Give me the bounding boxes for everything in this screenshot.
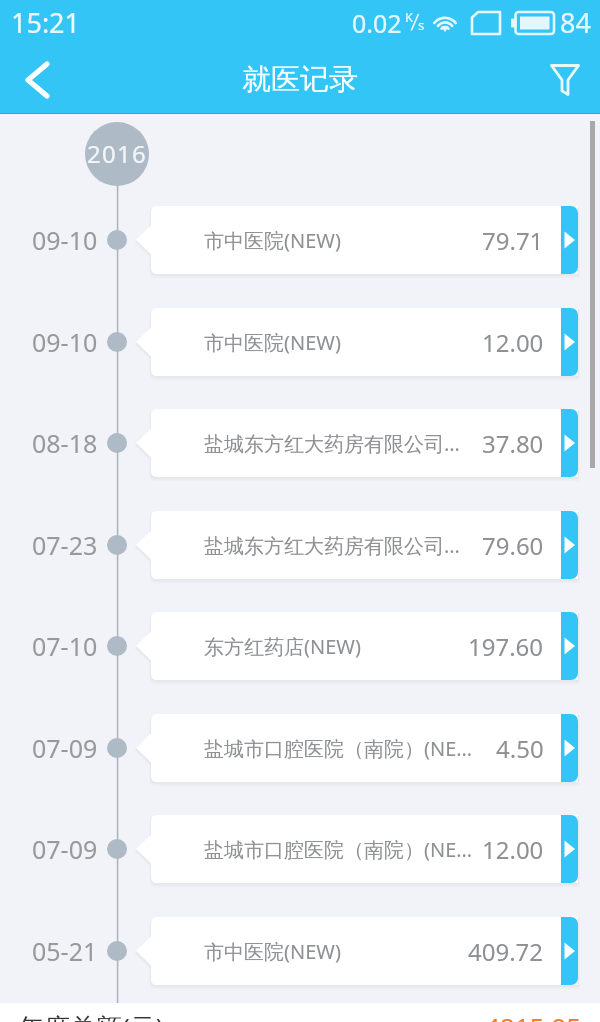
staticText: 409.72 [468,935,544,968]
staticText: 市中医院(NEW) [204,227,482,254]
button[interactable]: 盐城市口腔医院（南院）(NE… [136,815,578,883]
staticText: 市中医院(NEW) [204,329,482,356]
staticText: 07-10 [32,629,98,663]
staticText: 4815.95 [485,1009,582,1022]
button[interactable]: 东方红药店(NEW) [136,612,578,680]
staticText: 市中医院(NEW) [204,938,468,965]
staticText: 07-23 [32,528,98,562]
staticText: 0.02 [352,6,402,40]
button[interactable]: 2016 [85,122,149,186]
button[interactable]: 市中医院(NEW) [136,206,578,274]
button[interactable]: 年度总额(元) [0,1003,600,1022]
staticText: 197.60 [468,630,544,663]
staticText: 12.00 [482,326,544,359]
staticText: 37.80 [482,427,544,460]
button[interactable]: Back [3,46,71,114]
button[interactable]: 盐城市口腔医院（南院）(NE… [136,714,578,782]
staticText: 盐城东方红大药房有限公司… [204,430,482,457]
button[interactable]: 市中医院(NEW) [136,308,578,376]
staticText: 79.60 [482,529,544,562]
staticText: 盐城东方红大药房有限公司… [204,532,482,559]
staticText: 年度总额(元) [18,1009,164,1022]
staticText: 4.50 [496,732,544,765]
staticText: K [405,8,414,26]
staticText: 12.00 [482,833,544,866]
staticText: 盐城市口腔医院（南院）(NE… [204,735,496,762]
staticText: 79.71 [482,224,544,257]
staticText: 2016 [87,137,148,170]
staticText: 07-09 [32,731,98,765]
staticText: 05-21 [32,934,98,968]
staticText: s [418,16,425,34]
button[interactable]: 盐城东方红大药房有限公司… [136,409,578,477]
staticText: 盐城市口腔医院（南院）(NE… [204,836,482,863]
staticText: 09-10 [32,223,98,257]
staticText: 15:21 [11,4,81,41]
staticText: 08-18 [32,426,98,460]
staticText: 东方红药店(NEW) [204,633,468,660]
button[interactable]: 市中医院(NEW) [136,917,578,985]
staticText: 09-10 [32,325,98,359]
button[interactable]: Filter [531,46,599,114]
staticText: 就医记录 [242,61,358,98]
button[interactable]: 盐城东方红大药房有限公司… [136,511,578,579]
staticText: 84 [560,4,591,41]
staticText: 07-09 [32,832,98,866]
